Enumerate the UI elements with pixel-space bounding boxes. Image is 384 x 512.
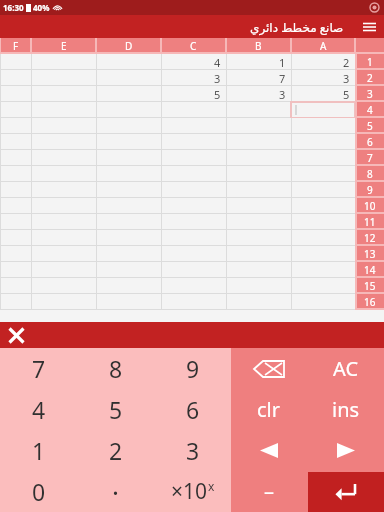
button[interactable] [31, 278, 96, 294]
button[interactable]: 8 [77, 348, 154, 389]
button[interactable] [226, 182, 291, 198]
button[interactable] [96, 86, 161, 102]
button[interactable] [31, 214, 96, 230]
button[interactable]: 8 [355, 166, 384, 182]
button[interactable] [291, 230, 355, 246]
button[interactable] [291, 134, 355, 150]
button[interactable] [31, 54, 96, 70]
button[interactable]: clr [231, 389, 307, 430]
button[interactable]: 3 [226, 86, 291, 102]
button[interactable]: 9 [154, 348, 231, 389]
button[interactable]: Move left [231, 430, 307, 471]
button[interactable] [96, 262, 161, 278]
button[interactable]: 9 [355, 182, 384, 198]
button[interactable]: 3 [355, 86, 384, 102]
button[interactable]: F [0, 38, 31, 54]
button[interactable] [0, 54, 31, 70]
button[interactable] [291, 278, 355, 294]
button[interactable] [31, 182, 96, 198]
button[interactable]: 5 [291, 86, 355, 102]
button[interactable] [226, 166, 291, 182]
button[interactable] [31, 102, 96, 118]
button[interactable]: E [31, 38, 96, 54]
button[interactable]: Menu [354, 15, 384, 38]
button[interactable]: 7 [226, 70, 291, 86]
button[interactable]: 4 [161, 54, 226, 70]
button[interactable] [96, 294, 161, 310]
button[interactable] [0, 246, 31, 262]
button[interactable] [161, 214, 226, 230]
button[interactable] [31, 134, 96, 150]
button[interactable] [291, 246, 355, 262]
button[interactable] [96, 70, 161, 86]
button[interactable]: AC [307, 348, 384, 389]
button[interactable] [0, 278, 31, 294]
button[interactable]: 12 [355, 230, 384, 246]
button[interactable] [291, 150, 355, 166]
button[interactable] [291, 118, 355, 134]
button[interactable]: Close [4, 323, 28, 347]
button[interactable] [0, 262, 31, 278]
button[interactable] [96, 230, 161, 246]
button[interactable] [31, 70, 96, 86]
button[interactable]: 10 [355, 198, 384, 214]
button[interactable]: 4 [0, 389, 77, 430]
button[interactable] [226, 102, 291, 118]
button[interactable] [355, 38, 384, 54]
button[interactable] [96, 54, 161, 70]
button[interactable]: 5 [77, 389, 154, 430]
button[interactable] [96, 102, 161, 118]
button[interactable]: C [161, 38, 226, 54]
button[interactable] [0, 118, 31, 134]
button[interactable] [226, 230, 291, 246]
button[interactable] [31, 86, 96, 102]
button[interactable] [0, 102, 31, 118]
button[interactable] [0, 150, 31, 166]
button[interactable] [96, 150, 161, 166]
button[interactable] [161, 278, 226, 294]
button[interactable] [96, 166, 161, 182]
button[interactable] [226, 150, 291, 166]
button[interactable] [161, 246, 226, 262]
button[interactable] [291, 214, 355, 230]
button[interactable] [291, 166, 355, 182]
button[interactable]: ins [307, 389, 384, 430]
button[interactable] [96, 214, 161, 230]
button[interactable]: 2 [355, 70, 384, 86]
button[interactable] [0, 70, 31, 86]
button[interactable]: 1 [226, 54, 291, 70]
button[interactable] [161, 134, 226, 150]
button[interactable]: Backspace [231, 348, 307, 389]
button[interactable] [0, 134, 31, 150]
button[interactable] [161, 262, 226, 278]
button[interactable]: 6 [355, 134, 384, 150]
button[interactable]: B [226, 38, 291, 54]
button[interactable]: A [291, 38, 355, 54]
button[interactable] [31, 246, 96, 262]
button[interactable]: 1 [0, 430, 77, 471]
button[interactable] [291, 262, 355, 278]
button[interactable] [96, 278, 161, 294]
button[interactable] [161, 182, 226, 198]
button[interactable] [226, 246, 291, 262]
button[interactable] [31, 198, 96, 214]
button[interactable] [161, 294, 226, 310]
button[interactable]: 7 [0, 348, 77, 389]
button[interactable]: 14 [355, 262, 384, 278]
button[interactable]: 13 [355, 246, 384, 262]
button[interactable] [96, 198, 161, 214]
button[interactable] [226, 262, 291, 278]
button[interactable] [96, 182, 161, 198]
button[interactable] [291, 294, 355, 310]
button[interactable]: 0 [0, 471, 77, 512]
button[interactable] [0, 214, 31, 230]
button[interactable]: Enter [308, 472, 384, 512]
button[interactable]: 1 [355, 54, 384, 70]
button[interactable] [31, 230, 96, 246]
button[interactable] [96, 246, 161, 262]
button[interactable] [291, 182, 355, 198]
button[interactable] [31, 118, 96, 134]
button[interactable]: 5 [161, 86, 226, 102]
button[interactable] [0, 230, 31, 246]
button[interactable] [226, 278, 291, 294]
